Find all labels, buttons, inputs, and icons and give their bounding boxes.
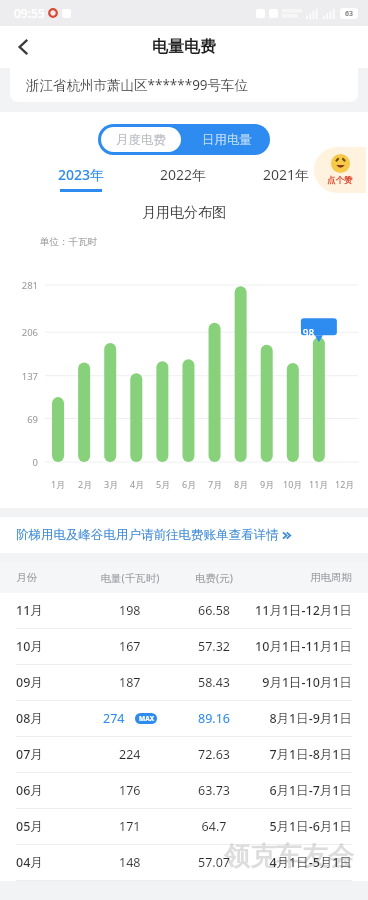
staticText: 7月1日-8月1日 [251, 746, 352, 763]
staticText: 10月 [16, 638, 83, 655]
staticText: 7月 [208, 478, 223, 490]
staticText: 2023年 [58, 165, 105, 184]
staticText: 用电周期 [251, 571, 352, 584]
staticText: 281 [0, 279, 38, 292]
staticText: 电量电费 [152, 37, 216, 57]
staticText: 0 [0, 456, 38, 469]
staticText: 4月1日-5月1日 [251, 854, 352, 871]
staticText: 206 [0, 326, 38, 339]
button[interactable]: 2023年 [30, 165, 132, 192]
button[interactable]: 2022年 [132, 165, 235, 192]
staticText: 月度电费 [116, 132, 166, 148]
staticText: 58.43 [177, 674, 251, 691]
staticText: 57.32 [177, 638, 251, 655]
button[interactable]: 阶梯用电及峰谷电用户请前往电费账单查看详情 [0, 517, 368, 553]
button[interactable]: Back [6, 29, 42, 65]
staticText: 09:55 [14, 5, 45, 21]
staticText: 日用电量 [202, 132, 252, 148]
staticText: 6月1日-7月1日 [251, 782, 352, 799]
staticText: 05月 [16, 818, 83, 835]
staticText: 5月 [156, 478, 171, 490]
staticText: 2022年 [160, 165, 207, 184]
button[interactable]: 11月 [0, 593, 368, 628]
staticText: 198 [297, 326, 315, 340]
staticText: 3月 [104, 478, 119, 490]
staticText: 04月 [16, 854, 83, 871]
staticText: 6月 [182, 478, 197, 490]
staticText: 89.16 [177, 710, 251, 727]
staticText: 11月1日-12月1日 [251, 602, 352, 619]
button[interactable]: 点个赞 [314, 147, 366, 193]
staticText: 11月 [16, 602, 83, 619]
staticText: 2021年 [263, 165, 310, 184]
staticText: 187 [119, 674, 141, 691]
staticText: 阶梯用电及峰谷电用户请前往电费账单查看详情 [16, 527, 279, 543]
staticText: 8月1日-9月1日 [251, 710, 352, 727]
button[interactable]: 2021年 [235, 165, 338, 192]
button[interactable]: 09月 [0, 665, 368, 700]
staticText: 09月 [16, 674, 83, 691]
staticText: 171 [119, 818, 141, 835]
staticText: 198 [119, 602, 141, 619]
staticText: 9月1日-10月1日 [251, 674, 352, 691]
staticText: 224 [119, 746, 141, 763]
staticText: 63.73 [177, 782, 251, 799]
staticText: 领克车友会 [224, 840, 354, 873]
button[interactable]: 月度电费 [101, 127, 181, 152]
staticText: 148 [119, 854, 141, 871]
staticText: 69 [0, 413, 38, 426]
staticText: 月份 [16, 571, 83, 584]
button[interactable]: 07月 [0, 737, 368, 772]
staticText: 07月 [16, 746, 83, 763]
staticText: 点个赞 [327, 175, 353, 186]
staticText: 274 [103, 710, 125, 727]
staticText: 12月 [335, 478, 355, 490]
staticText: 2月 [78, 478, 93, 490]
staticText: 167 [119, 638, 141, 655]
staticText: MAX [139, 714, 154, 723]
staticText: 66.58 [177, 602, 251, 619]
button[interactable]: 日用电量 [184, 124, 270, 155]
staticText: 月用电分布图 [0, 204, 368, 222]
button[interactable]: 05月 [0, 809, 368, 844]
button[interactable]: 浙江省杭州市萧山区******99号车位 [10, 68, 358, 102]
staticText: 11月 [309, 478, 329, 490]
staticText: 137 [0, 370, 38, 383]
staticText: 63 [345, 9, 354, 19]
staticText: 10月1日-11月1日 [251, 638, 352, 655]
staticText: 电量(千瓦时) [83, 571, 177, 585]
staticText: 9月 [260, 478, 275, 490]
staticText: 72.63 [177, 746, 251, 763]
staticText: 浙江省杭州市萧山区******99号车位 [26, 76, 249, 94]
staticText: 57.07 [177, 854, 251, 871]
staticText: 电费(元) [177, 571, 251, 585]
staticText: 4月 [130, 478, 145, 490]
staticText: 1月 [51, 478, 66, 490]
button[interactable]: 04月 [0, 845, 368, 880]
button[interactable]: 10月 [0, 629, 368, 664]
staticText: 8月 [234, 478, 249, 490]
staticText: 08月 [16, 710, 83, 727]
staticText: 单位：千瓦时 [40, 236, 97, 248]
staticText: 10月 [283, 478, 303, 490]
staticText: 176 [119, 782, 141, 799]
staticText: 64.7 [177, 818, 251, 835]
staticText: 5月1日-6月1日 [251, 818, 352, 835]
staticText: 06月 [16, 782, 83, 799]
button[interactable]: 06月 [0, 773, 368, 808]
button[interactable]: 08月 [0, 701, 368, 736]
